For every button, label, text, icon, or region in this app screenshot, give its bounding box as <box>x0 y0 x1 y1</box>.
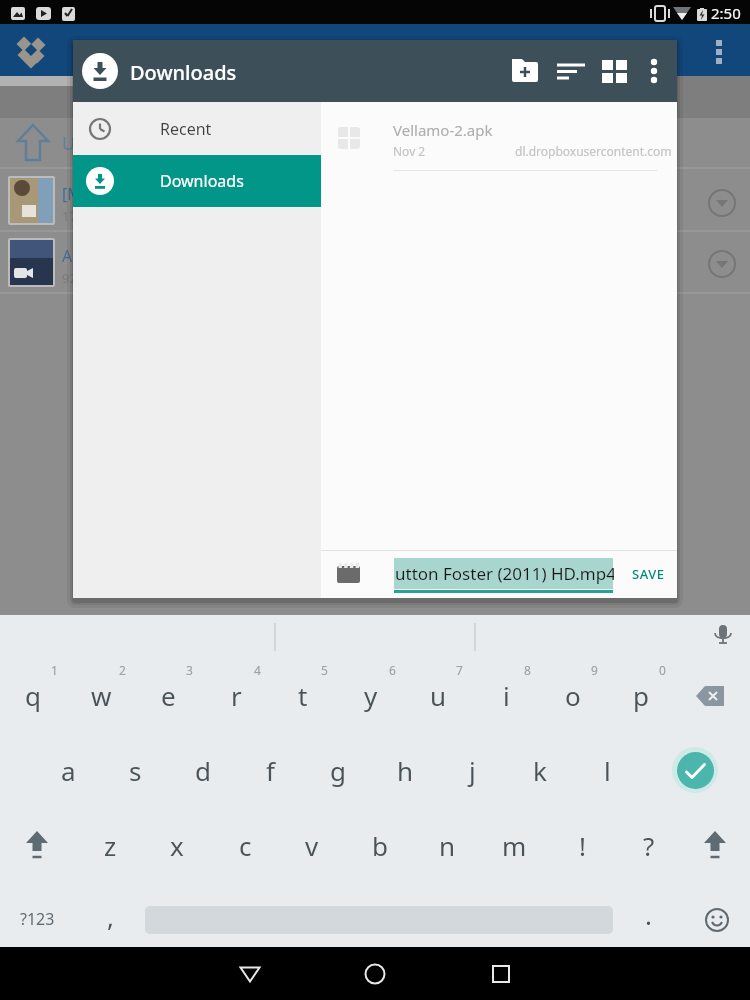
staticText: Downloads <box>160 170 244 192</box>
staticText: 7 <box>456 662 463 678</box>
staticText: 1 <box>51 662 58 678</box>
staticText: h <box>397 753 414 788</box>
staticText: SAVE <box>632 565 665 583</box>
staticText: An <box>62 245 83 267</box>
staticText: y <box>364 678 378 713</box>
button[interactable]: k <box>514 740 566 800</box>
button[interactable]: x <box>151 815 203 875</box>
staticText: ? <box>643 828 655 863</box>
staticText: s <box>129 753 142 788</box>
staticText: 4 <box>254 662 261 678</box>
button[interactable]: n <box>421 815 473 875</box>
button[interactable]: r <box>210 665 262 725</box>
button[interactable] <box>479 952 523 996</box>
staticText: ?123 <box>20 908 55 930</box>
staticText: v <box>305 828 319 863</box>
staticText: Nov 2 <box>393 143 426 159</box>
button[interactable] <box>353 952 397 996</box>
button[interactable] <box>685 666 737 726</box>
staticText: utton Foster (2011) HD.mp4 <box>395 562 614 585</box>
staticText: j <box>469 753 476 788</box>
button[interactable] <box>692 895 742 945</box>
staticText: c <box>239 828 252 863</box>
button[interactable]: d <box>177 740 229 800</box>
staticText: . <box>645 897 652 932</box>
button[interactable]: b <box>354 815 406 875</box>
staticText: Vellamo-2.apk <box>393 120 493 140</box>
button[interactable]: v <box>286 815 338 875</box>
button[interactable]: c <box>219 815 271 875</box>
button[interactable] <box>11 815 63 875</box>
button[interactable]: g <box>312 740 364 800</box>
button[interactable]: Downloads <box>73 155 321 207</box>
staticText: f <box>266 753 275 788</box>
button[interactable] <box>82 53 118 89</box>
staticText: a <box>61 753 76 788</box>
staticText: t <box>298 678 308 713</box>
staticText: 5 <box>321 662 328 678</box>
staticText: w <box>91 678 112 713</box>
button[interactable]: o <box>547 665 599 725</box>
staticText: d <box>195 753 211 788</box>
button[interactable]: a <box>42 740 94 800</box>
staticText: ! <box>579 828 586 863</box>
staticText: x <box>170 828 184 863</box>
staticText: 2 <box>119 662 126 678</box>
button[interactable]: Vellamo-2.apk <box>321 102 677 170</box>
button[interactable] <box>672 747 718 793</box>
staticText: Up <box>62 131 87 156</box>
button[interactable]: l <box>581 740 633 800</box>
staticText: q <box>25 678 41 713</box>
button[interactable]: i <box>480 665 532 725</box>
staticText: dl.dropboxusercontent.com <box>515 143 672 159</box>
button[interactable]: h <box>379 740 431 800</box>
staticText: Recent <box>160 118 212 140</box>
button[interactable]: p <box>615 665 667 725</box>
button[interactable]: y <box>345 665 397 725</box>
staticText: 17: <box>62 207 81 225</box>
button[interactable]: ! <box>556 815 608 875</box>
button[interactable]: u <box>412 665 464 725</box>
button[interactable]: , <box>84 886 136 946</box>
button[interactable]: m <box>488 815 540 875</box>
button[interactable]: j <box>446 740 498 800</box>
button[interactable] <box>228 952 272 996</box>
staticText: p <box>633 678 649 713</box>
button[interactable]: s <box>109 740 161 800</box>
button[interactable]: ? <box>623 815 675 875</box>
staticText: l <box>604 753 611 788</box>
staticText: r <box>231 678 242 713</box>
button[interactable]: f <box>244 740 296 800</box>
staticText: 92 <box>62 269 77 287</box>
staticText: u <box>430 678 447 713</box>
staticText: 6 <box>389 662 396 678</box>
staticText: 0 <box>659 662 666 678</box>
button[interactable]: z <box>84 815 136 875</box>
staticText: n <box>439 828 456 863</box>
button[interactable]: q <box>7 665 59 725</box>
staticText: 2:50 <box>711 3 741 23</box>
button[interactable]: utton Foster (2011) HD.mp4 <box>394 558 613 589</box>
staticText: z <box>104 828 117 863</box>
staticText: [Mo <box>62 183 92 205</box>
staticText: i <box>503 678 510 713</box>
staticText: , <box>107 899 114 934</box>
staticText: Downloads <box>130 59 237 86</box>
staticText: 3 <box>186 662 193 678</box>
staticText: g <box>330 753 346 788</box>
staticText: b <box>372 828 388 863</box>
staticText: e <box>161 678 176 713</box>
button[interactable] <box>689 815 741 875</box>
staticText: 9 <box>591 662 598 678</box>
button[interactable]: e <box>142 665 194 725</box>
button[interactable]: t <box>277 665 329 725</box>
staticText: k <box>533 753 547 788</box>
staticText: m <box>502 828 527 863</box>
button[interactable]: SAVE <box>624 560 672 588</box>
button[interactable]: ?123 <box>8 890 66 948</box>
button[interactable]: . <box>622 884 674 944</box>
button[interactable]: Recent <box>73 102 321 155</box>
staticText: o <box>565 678 581 713</box>
button[interactable]: w <box>75 665 127 725</box>
